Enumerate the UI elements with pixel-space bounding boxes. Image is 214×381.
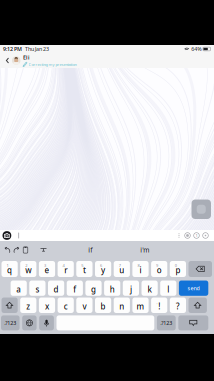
staticText: u [119, 265, 124, 275]
button[interactable]: j [123, 280, 139, 296]
staticText: 0 [175, 263, 177, 268]
staticText: t [83, 265, 86, 275]
button[interactable]: Timer [192, 231, 201, 240]
button[interactable]: Record [201, 231, 210, 240]
staticText: k [148, 284, 152, 295]
staticText: c [64, 301, 68, 312]
button[interactable]: s [29, 280, 45, 296]
staticText: d [54, 284, 59, 295]
staticText: i [139, 265, 141, 275]
button[interactable]: More [175, 231, 183, 239]
staticText: 1 [6, 263, 8, 268]
staticText: 8 [137, 263, 139, 268]
button[interactable]: m [132, 297, 149, 313]
staticText: , [157, 299, 158, 304]
staticText: 1 [195, 233, 197, 238]
button[interactable]: Back [3, 53, 12, 68]
button[interactable]: Numbers [157, 315, 176, 330]
staticText: send [188, 285, 200, 292]
staticText: ? [176, 301, 180, 312]
staticText: j [130, 284, 132, 295]
button[interactable]: Hide Keyboard [178, 315, 208, 330]
staticText: .?123 [4, 319, 16, 326]
button[interactable]: Eli [12, 54, 77, 67]
button[interactable]: , [151, 297, 167, 313]
button[interactable]: 9 [151, 261, 167, 277]
staticText: o [157, 265, 162, 275]
staticText: ! [158, 301, 160, 312]
button[interactable]: 1 [1, 261, 18, 277]
staticText: m [136, 301, 144, 312]
staticText: Correcting my presentation [29, 62, 77, 67]
staticText: 9 [156, 263, 158, 268]
staticText: 7 [119, 263, 121, 268]
button[interactable]: 2 [20, 261, 36, 277]
button[interactable]: v [76, 297, 92, 313]
button[interactable]: 5 [76, 261, 92, 277]
button[interactable]: Undo [3, 245, 12, 254]
staticText: Thu Jan 23 [25, 45, 49, 53]
button[interactable]: i'm [132, 244, 158, 255]
button[interactable]: 3 [39, 261, 55, 277]
button[interactable]: c [58, 297, 74, 313]
button[interactable]: Camera [2, 231, 11, 240]
button[interactable]: 6 [95, 261, 111, 277]
staticText: y [101, 265, 105, 275]
button[interactable]: . [170, 297, 186, 313]
button[interactable]: Numbers [1, 315, 20, 330]
button[interactable]: Space [56, 315, 154, 330]
button[interactable]: 4 [58, 261, 74, 277]
staticText: 6 [100, 263, 102, 268]
staticText: 2 [25, 263, 27, 268]
button[interactable]: Format [38, 245, 49, 254]
button[interactable]: a [11, 280, 27, 296]
button[interactable]: if [77, 244, 103, 255]
button[interactable]: Shift [1, 297, 18, 313]
button[interactable]: 8 [132, 261, 149, 277]
staticText: .?123 [160, 319, 172, 326]
button[interactable]: Paste [21, 245, 30, 254]
button[interactable]: h [104, 280, 120, 296]
staticText: v [82, 301, 86, 312]
staticText: b [101, 301, 106, 312]
staticText: x [45, 301, 49, 312]
staticText: w [25, 265, 31, 275]
staticText: if [88, 246, 92, 254]
staticText: p [175, 265, 180, 275]
staticText: 9:12 PM [3, 45, 22, 53]
button[interactable]: k [141, 280, 158, 296]
button[interactable]: d [48, 280, 64, 296]
staticText: Eli [23, 54, 30, 61]
button[interactable]: 7 [114, 261, 130, 277]
staticText: r [64, 265, 67, 275]
button[interactable]: Effects [183, 231, 192, 240]
staticText: 4 [63, 263, 65, 268]
button[interactable]: f [67, 280, 83, 296]
button[interactable]: x [39, 297, 55, 313]
button[interactable]: g [85, 280, 102, 296]
staticText: i'm [140, 246, 149, 254]
button[interactable]: Delete [188, 261, 212, 277]
staticText: g [91, 284, 96, 295]
button[interactable]: z [20, 297, 36, 313]
button[interactable]: send [179, 280, 208, 296]
button[interactable]: Dictate [39, 315, 54, 330]
staticText: l [167, 284, 169, 295]
button[interactable]: b [95, 297, 111, 313]
staticText: 5 [81, 263, 83, 268]
button[interactable]: n [114, 297, 130, 313]
staticText: z [26, 301, 30, 312]
button[interactable]: Emoji [22, 315, 37, 330]
staticText: h [110, 284, 115, 295]
staticText: n [119, 301, 124, 312]
staticText: e [44, 265, 49, 275]
button[interactable]: Redo [12, 245, 21, 254]
button[interactable]: l [160, 280, 176, 296]
button[interactable]: 0 [170, 261, 186, 277]
staticText: f [73, 284, 76, 295]
staticText: s [35, 284, 39, 295]
button[interactable]: Shift [188, 297, 207, 313]
staticText: 64% [191, 45, 201, 53]
staticText: q [7, 265, 12, 275]
staticText: . [175, 299, 176, 304]
